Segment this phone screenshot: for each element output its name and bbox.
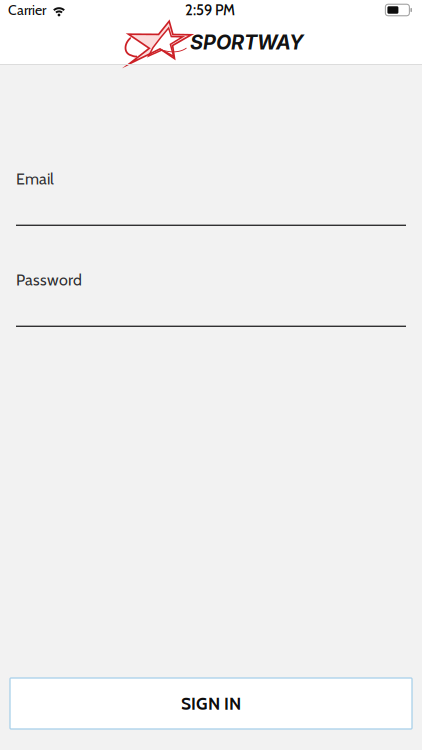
button[interactable]: Password xyxy=(16,270,406,327)
staticText: 2:59 PM xyxy=(185,1,235,19)
staticText: Email xyxy=(16,169,54,188)
staticText: SIGN IN xyxy=(181,693,241,714)
staticText: Carrier xyxy=(8,1,46,18)
staticText: SPORTWAY xyxy=(190,30,304,54)
button[interactable]: Email xyxy=(16,169,406,226)
button[interactable]: SIGN IN xyxy=(10,678,412,729)
staticText: Password xyxy=(16,270,82,289)
